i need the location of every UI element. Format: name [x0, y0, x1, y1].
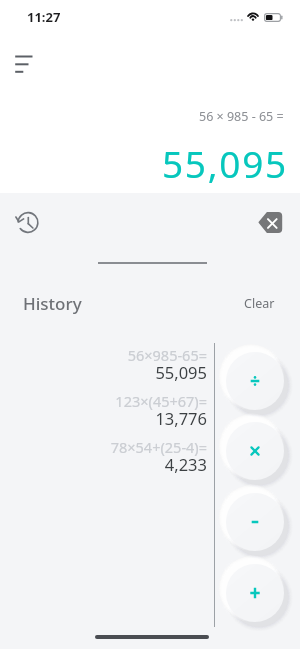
staticText: 55,095 — [162, 138, 288, 188]
staticText: 4,233 — [164, 453, 207, 475]
button[interactable]: History — [12, 207, 44, 239]
button[interactable]: Menu — [8, 48, 40, 80]
button[interactable]: 123×(45+67)= — [0, 391, 300, 433]
button[interactable]: Backspace — [258, 212, 290, 244]
staticText: 78×54+(25-4)= — [110, 437, 207, 457]
staticText: 56 × 985 - 65 = — [199, 108, 284, 125]
button[interactable]: + — [226, 564, 284, 622]
staticText: Clear — [244, 295, 275, 312]
button[interactable]: 78×54+(25-4)= — [0, 437, 300, 479]
button[interactable]: − — [226, 493, 284, 551]
button[interactable]: Clear — [242, 292, 277, 315]
staticText: 55,095 — [155, 361, 207, 383]
button[interactable]: × — [226, 422, 284, 480]
staticText: 11:27 — [27, 8, 61, 26]
button[interactable]: ÷ — [226, 352, 284, 410]
staticText: 56×985-65= — [127, 345, 207, 365]
staticText: History — [23, 292, 82, 315]
staticText: 123×(45+67)= — [115, 391, 207, 411]
staticText: 13,776 — [155, 407, 207, 429]
button[interactable]: 56×985-65= — [0, 345, 300, 387]
